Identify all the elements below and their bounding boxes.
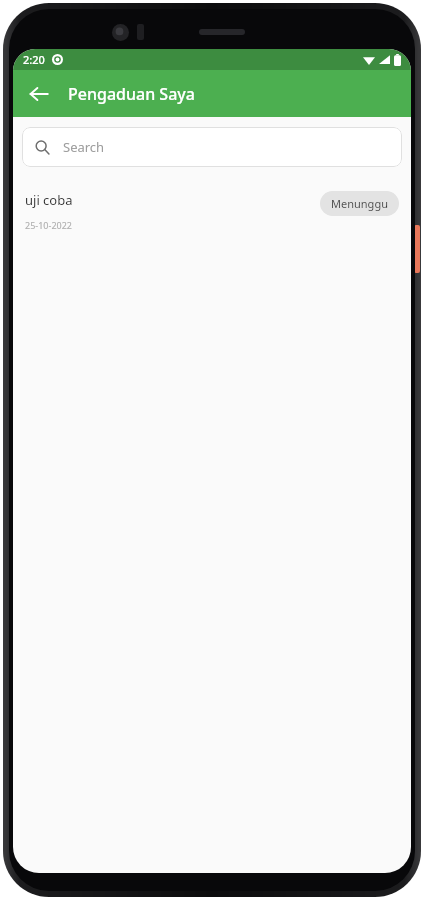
staticText: Search	[63, 138, 105, 156]
button[interactable]: Menunggu	[320, 191, 399, 216]
button[interactable]: Back	[17, 72, 61, 116]
staticText: uji coba	[25, 191, 73, 209]
staticText: 2:20	[23, 52, 45, 67]
staticText: Menunggu	[331, 196, 388, 211]
staticText: Pengaduan Saya	[68, 83, 195, 105]
staticText: 25-10-2022	[25, 219, 72, 231]
button[interactable]: uji coba	[13, 185, 411, 237]
button[interactable]: Search	[22, 127, 402, 167]
